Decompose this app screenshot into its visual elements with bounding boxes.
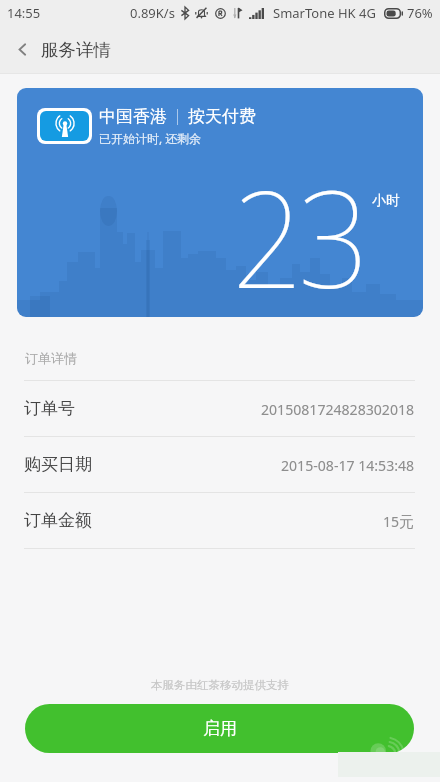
staticText: 订单详情 (25, 350, 77, 366)
staticText: 15元 (383, 511, 415, 531)
button[interactable]: Back (0, 25, 440, 74)
staticText: 购买日期 (24, 454, 92, 475)
staticText: 0.89K/s (130, 4, 175, 22)
staticText: 中国香港 (99, 106, 167, 127)
staticText: 小时 (372, 192, 400, 210)
staticText: 已开始计时, 还剩余 (99, 130, 202, 146)
staticText: 服务详情 (41, 39, 111, 61)
staticText: 76% (407, 4, 433, 22)
staticText: 按天付费 (188, 106, 256, 127)
staticText: 启用 (203, 718, 237, 739)
staticText: 订单金额 (24, 510, 92, 531)
staticText: 订单号 (24, 398, 75, 419)
staticText: 23 (232, 146, 365, 317)
staticText: 14:55 (7, 4, 41, 22)
staticText: SmarTone HK 4G (273, 4, 376, 22)
button[interactable]: 购买日期 (24, 437, 415, 492)
staticText: 2015081724828302018 (261, 399, 415, 419)
button[interactable]: 启用 (25, 704, 414, 753)
button[interactable]: 订单金额 (24, 493, 415, 548)
staticText: 2015-08-17 14:53:48 (281, 455, 415, 475)
other: Back (15, 42, 30, 57)
button[interactable]: 订单号 (24, 381, 415, 436)
staticText: 本服务由红茶移动提供支持 (0, 678, 440, 692)
